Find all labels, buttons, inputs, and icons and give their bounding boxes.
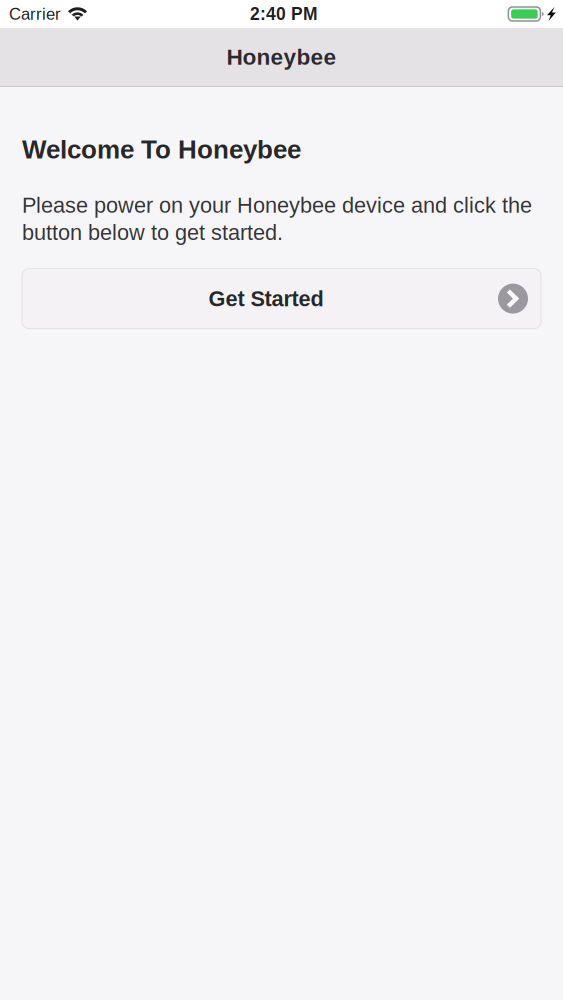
staticText: Please power on your Honeybee device and…: [22, 193, 532, 217]
button[interactable]: Get Started: [22, 269, 541, 329]
staticText: Welcome To Honeybee: [22, 135, 301, 164]
staticText: 2:40 PM: [250, 4, 318, 24]
staticText: Honeybee: [226, 44, 336, 70]
staticText: button below to get started.: [22, 220, 283, 245]
staticText: Get Started: [208, 286, 323, 311]
staticText: Carrier: [9, 5, 61, 23]
